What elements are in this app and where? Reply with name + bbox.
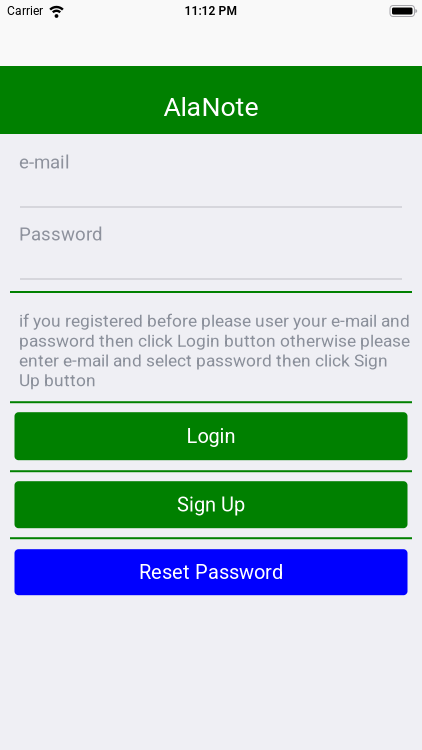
staticText: AlaNote <box>163 92 258 122</box>
staticText: Password <box>19 223 103 245</box>
staticText: Reset Password <box>139 561 283 584</box>
button[interactable]: e-mail <box>0 151 422 173</box>
button[interactable]: Reset Password <box>14 549 407 595</box>
staticText: e-mail <box>19 151 70 173</box>
button[interactable]: Sign Up <box>14 481 407 528</box>
staticText: Login <box>186 425 235 448</box>
staticText: if you registered before please user you… <box>19 311 410 390</box>
staticText: Sign Up <box>177 493 245 516</box>
button[interactable]: Password <box>0 223 422 245</box>
staticText: Carrier <box>7 4 43 18</box>
button[interactable]: Login <box>14 412 407 460</box>
staticText: 11:12 PM <box>184 4 237 18</box>
